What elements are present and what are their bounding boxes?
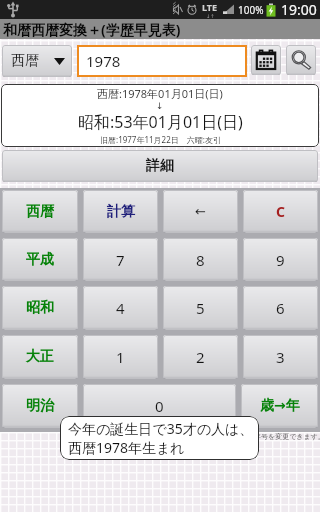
staticText: 歳→年 — [260, 397, 300, 415]
staticText: LTE — [202, 1, 218, 13]
staticText: 平成 — [26, 251, 54, 269]
staticText: ← — [195, 204, 206, 219]
staticText: 昭和 — [26, 299, 54, 317]
button[interactable]: ← — [163, 190, 238, 233]
staticText: 100% — [238, 3, 264, 17]
staticText: 和暦西暦変換＋(学歴早見表) — [3, 20, 181, 39]
staticText: 8 — [196, 250, 205, 270]
staticText: 1978 — [86, 51, 121, 71]
staticText: 7 — [116, 250, 125, 270]
staticText: 4 — [116, 298, 125, 318]
button[interactable]: 2 — [163, 335, 238, 379]
button[interactable]: 大正 — [2, 335, 78, 379]
button[interactable]: 西暦 — [2, 190, 78, 233]
button[interactable]: 歳→年 — [241, 384, 318, 428]
button[interactable]: 6 — [243, 286, 318, 330]
button[interactable]: 明治 — [2, 384, 78, 428]
button[interactable]: Search — [286, 45, 316, 75]
staticText: C — [276, 202, 285, 221]
staticText: 1 — [116, 347, 125, 367]
staticText: 今年の誕生日で35才の人は、 — [68, 419, 254, 438]
staticText: 詳細 — [146, 157, 174, 175]
button[interactable]: 計算 — [83, 190, 158, 233]
button[interactable]: 今年の誕生日で35才の人は、 — [60, 416, 259, 460]
staticText: 明治 — [26, 397, 54, 415]
staticText: 大正 — [26, 348, 54, 366]
staticText: 西暦 — [26, 203, 54, 221]
staticText: 0 — [155, 396, 164, 416]
button[interactable]: 5 — [163, 286, 238, 330]
staticText: 西暦:1978年01月01日(日) — [97, 86, 223, 101]
staticText: 3 — [276, 347, 285, 367]
button[interactable]: Calendar — [251, 45, 281, 75]
button[interactable]: C — [243, 190, 318, 233]
button[interactable]: 3 — [243, 335, 318, 379]
button[interactable]: 1978 — [77, 45, 247, 77]
staticText: 2 — [196, 347, 205, 367]
button[interactable]: 平成 — [2, 238, 78, 281]
button[interactable]: 8 — [163, 238, 238, 281]
button[interactable]: 昭和 — [2, 286, 78, 330]
button[interactable]: 7 — [83, 238, 158, 281]
button[interactable]: 0 — [83, 384, 236, 428]
staticText: 昭和:53年01月01日(日) — [78, 111, 243, 133]
staticText: 6 — [276, 298, 285, 318]
button[interactable]: 西暦 — [2, 45, 72, 77]
button[interactable]: 4 — [83, 286, 158, 330]
button[interactable]: 9 — [243, 238, 318, 281]
button[interactable]: 詳細 — [2, 150, 318, 182]
staticText: 9 — [276, 250, 285, 270]
staticText: 西暦 — [11, 52, 39, 70]
staticText: 西暦1978年生まれ — [68, 438, 185, 457]
staticText: 19:00 — [281, 0, 317, 19]
staticText: 5 — [196, 298, 205, 318]
staticText: ↓ — [156, 101, 164, 111]
staticText: ↓↑ — [206, 13, 215, 19]
staticText: 計算 — [107, 203, 135, 221]
button[interactable]: 1 — [83, 335, 158, 379]
staticText: 年号を変更できます。 — [254, 432, 320, 441]
staticText: 旧暦:1977年11月22日 六曜:友引 — [100, 134, 221, 145]
